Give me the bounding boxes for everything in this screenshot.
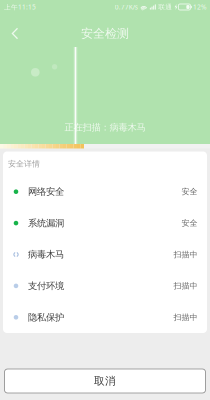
button[interactable]: 网络安全	[3, 176, 207, 207]
staticText: 隐私保护	[28, 312, 64, 323]
staticText: 取消	[94, 374, 116, 387]
staticText: 上午11:15	[4, 3, 36, 11]
staticText: 扫描中	[173, 281, 197, 291]
staticText: 安全详情	[8, 159, 40, 169]
staticText: 安全	[181, 187, 197, 197]
staticText: 安全检测	[81, 26, 129, 41]
staticText: 安全	[181, 218, 197, 228]
staticText: 网络安全	[28, 186, 64, 197]
staticText: 扫描中	[173, 250, 197, 259]
staticText: 0.77K/s	[115, 3, 138, 11]
button[interactable]: 隐私保护	[3, 302, 207, 333]
staticText: 正在扫描：病毒木马	[64, 121, 145, 133]
button[interactable]: 返回	[0, 18, 30, 48]
button[interactable]: 系统漏洞	[3, 207, 207, 239]
staticText: 联通	[158, 3, 172, 11]
staticText: 系统漏洞	[28, 217, 64, 229]
staticText: 12%	[193, 3, 207, 11]
button[interactable]: 取消	[4, 369, 205, 393]
staticText: 扫描中	[173, 312, 197, 322]
button[interactable]: 病毒木马	[3, 239, 207, 270]
button[interactable]: 支付环境	[3, 270, 207, 302]
staticText: 支付环境	[28, 280, 64, 292]
staticText: 病毒木马	[28, 249, 64, 260]
